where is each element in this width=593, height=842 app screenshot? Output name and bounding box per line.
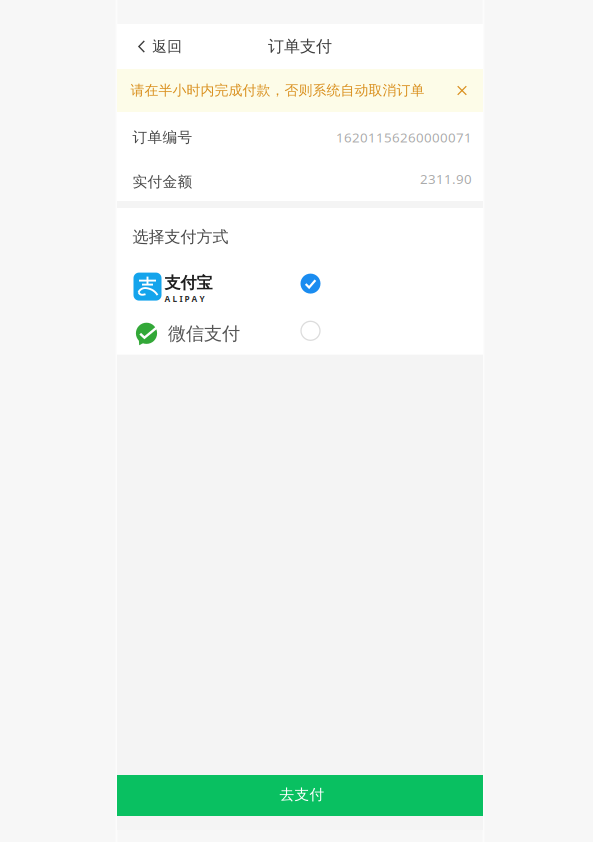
staticText: 支付宝 [164, 273, 212, 293]
button[interactable]: 返回 [117, 24, 196, 69]
staticText: 2311.90 [420, 170, 472, 188]
staticText: 16201156260000071 [336, 128, 472, 146]
button[interactable]: 微信支付 [117, 307, 483, 354]
staticText: 返回 [152, 37, 182, 55]
staticText: 订单支付 [268, 37, 332, 56]
button[interactable]: 去支付 [117, 775, 483, 816]
staticText: 订单编号 [132, 128, 192, 146]
staticText: A L I P A Y [164, 293, 204, 304]
button[interactable]: 支付宝 [117, 260, 483, 307]
staticText: 去支付 [279, 785, 324, 804]
staticText: 实付金额 [132, 173, 192, 191]
button[interactable]: 关闭提示 [449, 69, 475, 112]
staticText: 微信支付 [168, 322, 240, 345]
staticText: 选择支付方式 [132, 227, 228, 247]
staticText: 请在半小时内完成付款，否则系统自动取消订单 [130, 82, 424, 99]
